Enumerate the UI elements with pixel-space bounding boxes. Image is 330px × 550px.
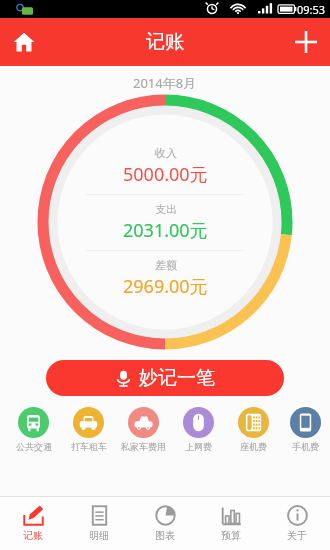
button[interactable]: 关于 [264,497,330,550]
button[interactable]: 私家车费用 [116,407,171,452]
staticText: 记账 [146,30,184,54]
staticText: 妙记一笔 [139,366,215,390]
staticText: 收入 [155,146,177,160]
button[interactable]: 图表 [132,497,198,550]
staticText: 2014年8月 [133,74,197,92]
staticText: 上网费 [185,441,212,452]
staticText: 关于 [287,529,307,542]
staticText: 公共交通 [16,441,52,452]
staticText: 记账 [23,529,43,542]
button[interactable]: 上网费 [171,407,226,452]
staticText: 2031.00元 [123,218,208,243]
button[interactable]: 明细 [66,497,132,550]
button[interactable]: 预算 [198,497,264,550]
staticText: 09:53 [297,2,326,17]
staticText: 图表 [155,529,175,542]
button[interactable]: Add [282,18,330,66]
button[interactable]: 妙记一笔 [46,360,284,396]
staticText: 差额 [155,258,177,272]
button[interactable]: Home [0,18,48,66]
staticText: 预算 [221,529,241,542]
staticText: 打车租车 [71,441,107,452]
staticText: 座机费 [240,441,267,452]
button[interactable]: 记账 [0,497,66,550]
button[interactable]: 座机费 [226,407,281,452]
staticText: 私家车费用 [121,441,166,452]
button[interactable]: 打车租车 [61,407,116,452]
button[interactable]: 公共交通 [6,407,61,452]
button[interactable]: 手机费 [281,407,330,452]
staticText: 2969.00元 [123,274,208,299]
staticText: 明细 [89,529,109,542]
staticText: 手机费 [292,441,319,452]
staticText: 支出 [155,202,177,216]
staticText: 5000.00元 [123,162,208,187]
